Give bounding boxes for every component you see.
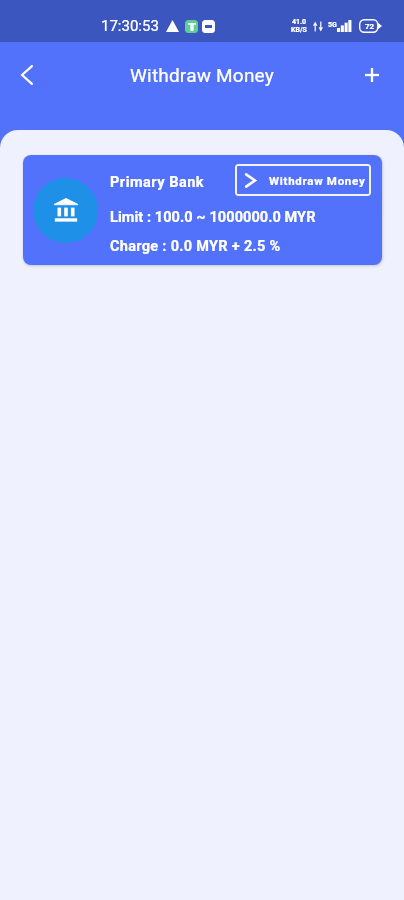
button[interactable]: Back bbox=[7, 55, 47, 95]
button[interactable]: Add bbox=[352, 55, 392, 95]
staticText: 41.0 bbox=[292, 18, 307, 26]
button[interactable]: Withdraw Money bbox=[235, 164, 371, 196]
staticText: Charge : 0.0 MYR + 2.5 % bbox=[110, 238, 281, 255]
staticText: Withdraw Money bbox=[130, 64, 274, 86]
staticText: 5G bbox=[328, 21, 337, 29]
button[interactable]: Primary Bank bbox=[23, 155, 382, 265]
staticText: 17:30:53 bbox=[101, 17, 159, 35]
staticText: Primary Bank bbox=[110, 174, 205, 191]
staticText: KB/S bbox=[291, 26, 307, 34]
staticText: 72 bbox=[365, 22, 375, 31]
staticText: Withdraw Money bbox=[269, 174, 366, 187]
staticText: Limit : 100.0 ~ 1000000.0 MYR bbox=[110, 209, 316, 226]
